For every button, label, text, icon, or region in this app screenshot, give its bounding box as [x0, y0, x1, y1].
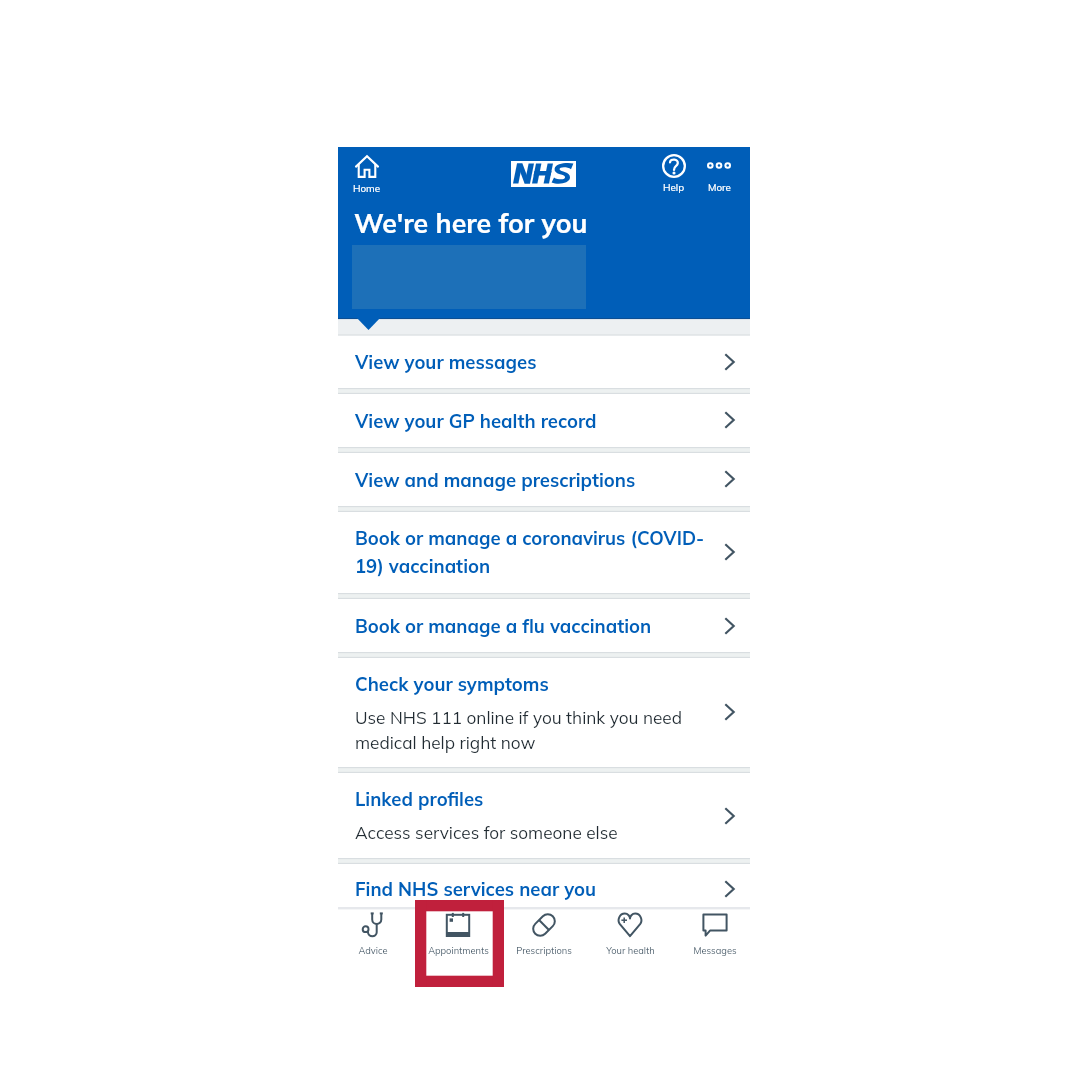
button[interactable]: Advice: [331, 908, 415, 965]
button[interactable]: More: [695, 148, 743, 199]
staticText: Appointments: [428, 945, 489, 957]
button[interactable]: Appointments: [416, 908, 500, 965]
staticText: View and manage prescriptions: [355, 468, 636, 491]
staticText: View your GP health record: [355, 409, 597, 432]
staticText: Messages: [693, 945, 737, 957]
button[interactable]: Your health: [588, 908, 672, 965]
staticText: Home: [353, 182, 381, 194]
button[interactable]: Help: [650, 148, 698, 199]
staticText: Use NHS 111 online if you think you need…: [355, 707, 707, 753]
staticText: Access services for someone else: [355, 822, 618, 844]
staticText: Book or manage a coronavirus (COVID-​19)…: [355, 526, 707, 578]
button[interactable]: Check your symptoms: [338, 657, 750, 767]
button[interactable]: View your messages: [338, 335, 750, 388]
staticText: Check your symptoms: [355, 672, 549, 695]
staticText: Prescriptions: [516, 945, 572, 957]
staticText: Linked profiles: [355, 787, 484, 810]
button[interactable]: View and manage prescriptions: [338, 452, 750, 506]
staticText: Your health: [606, 945, 655, 957]
staticText: We're here for you: [354, 206, 588, 240]
button[interactable]: Find NHS services near you: [338, 863, 750, 914]
button[interactable]: Linked profiles: [338, 773, 750, 858]
button[interactable]: Book or manage a flu vaccination: [338, 599, 750, 652]
button[interactable]: Messages: [673, 908, 757, 965]
staticText: Advice: [358, 945, 388, 957]
button[interactable]: View your GP health record: [338, 393, 750, 447]
staticText: Help: [663, 181, 685, 193]
staticText: View your messages: [355, 350, 537, 373]
button[interactable]: Book or manage a coronavirus (COVID-​19)…: [338, 511, 750, 593]
staticText: Find NHS services near you: [355, 877, 597, 900]
staticText: More: [708, 181, 731, 193]
button[interactable]: Prescriptions: [502, 908, 586, 965]
staticText: Book or manage a flu vaccination: [355, 614, 652, 637]
button[interactable]: Home: [341, 149, 393, 200]
